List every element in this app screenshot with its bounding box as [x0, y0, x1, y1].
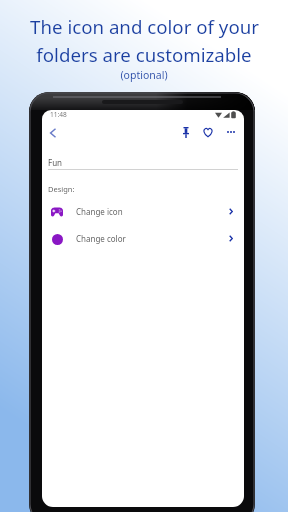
staticText: Change icon	[76, 206, 123, 217]
staticText: Design:	[48, 184, 75, 194]
staticText: folders are customizable	[36, 42, 252, 67]
button[interactable]: More options	[222, 123, 240, 141]
button[interactable]: Back	[44, 124, 62, 142]
button[interactable]: Change icon	[42, 199, 244, 224]
staticText: The icon and color of your	[30, 14, 259, 39]
staticText: (optional)	[120, 68, 168, 82]
staticText: Fun	[48, 157, 63, 168]
button[interactable]: Change color	[42, 226, 244, 251]
staticText: Change color	[76, 233, 126, 244]
button[interactable]: Favorite	[199, 123, 217, 141]
button[interactable]: Pin	[177, 123, 195, 141]
staticText: 11:48	[50, 110, 67, 119]
